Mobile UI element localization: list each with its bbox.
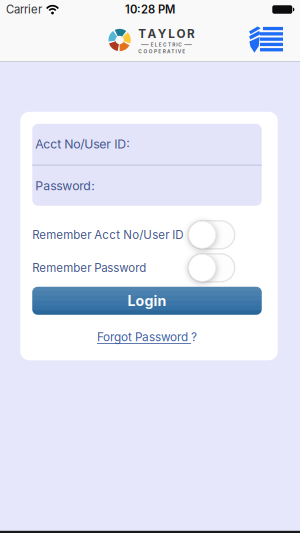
staticText: E xyxy=(158,49,161,54)
button[interactable]: Remember Acct No/User ID xyxy=(188,221,235,249)
staticText: P xyxy=(154,49,157,54)
staticText: Password: xyxy=(35,178,95,193)
staticText: O xyxy=(143,49,147,54)
staticText: Login xyxy=(127,292,166,309)
staticText: R xyxy=(163,49,166,54)
staticText: L xyxy=(168,27,175,41)
staticText: T xyxy=(168,42,171,48)
staticText: Remember Password xyxy=(32,261,146,275)
staticText: E xyxy=(159,42,162,48)
staticText: Acct No/User ID: xyxy=(35,137,130,151)
staticText: C xyxy=(163,42,167,48)
button[interactable]: Acct No/User ID xyxy=(32,124,262,165)
staticText: R xyxy=(172,42,175,48)
staticText: C xyxy=(138,49,142,54)
staticText: I xyxy=(176,42,177,48)
button[interactable]: Forgot Password ? xyxy=(97,330,197,344)
button[interactable]: Login xyxy=(32,287,262,315)
staticText: 10:28 PM xyxy=(125,3,175,16)
staticText: V xyxy=(178,49,181,54)
staticText: T xyxy=(171,49,174,54)
staticText: R xyxy=(187,27,195,41)
staticText: Y xyxy=(158,27,167,41)
staticText: A xyxy=(167,49,170,54)
staticText: C xyxy=(178,42,182,48)
staticText: Forgot Password ? xyxy=(97,330,197,344)
staticText: Remember Acct No/User ID xyxy=(32,228,183,242)
button[interactable]: Password xyxy=(32,166,262,206)
button[interactable]: Remember Password xyxy=(188,254,235,282)
button[interactable]: Sign Up xyxy=(249,26,283,53)
staticText: O xyxy=(149,49,153,54)
staticText: Carrier xyxy=(6,3,42,16)
staticText: T xyxy=(138,27,146,41)
staticText: L xyxy=(155,42,158,48)
staticText: E xyxy=(151,42,154,48)
staticText: E xyxy=(182,49,185,54)
staticText: O xyxy=(176,27,185,41)
staticText: A xyxy=(147,27,156,41)
